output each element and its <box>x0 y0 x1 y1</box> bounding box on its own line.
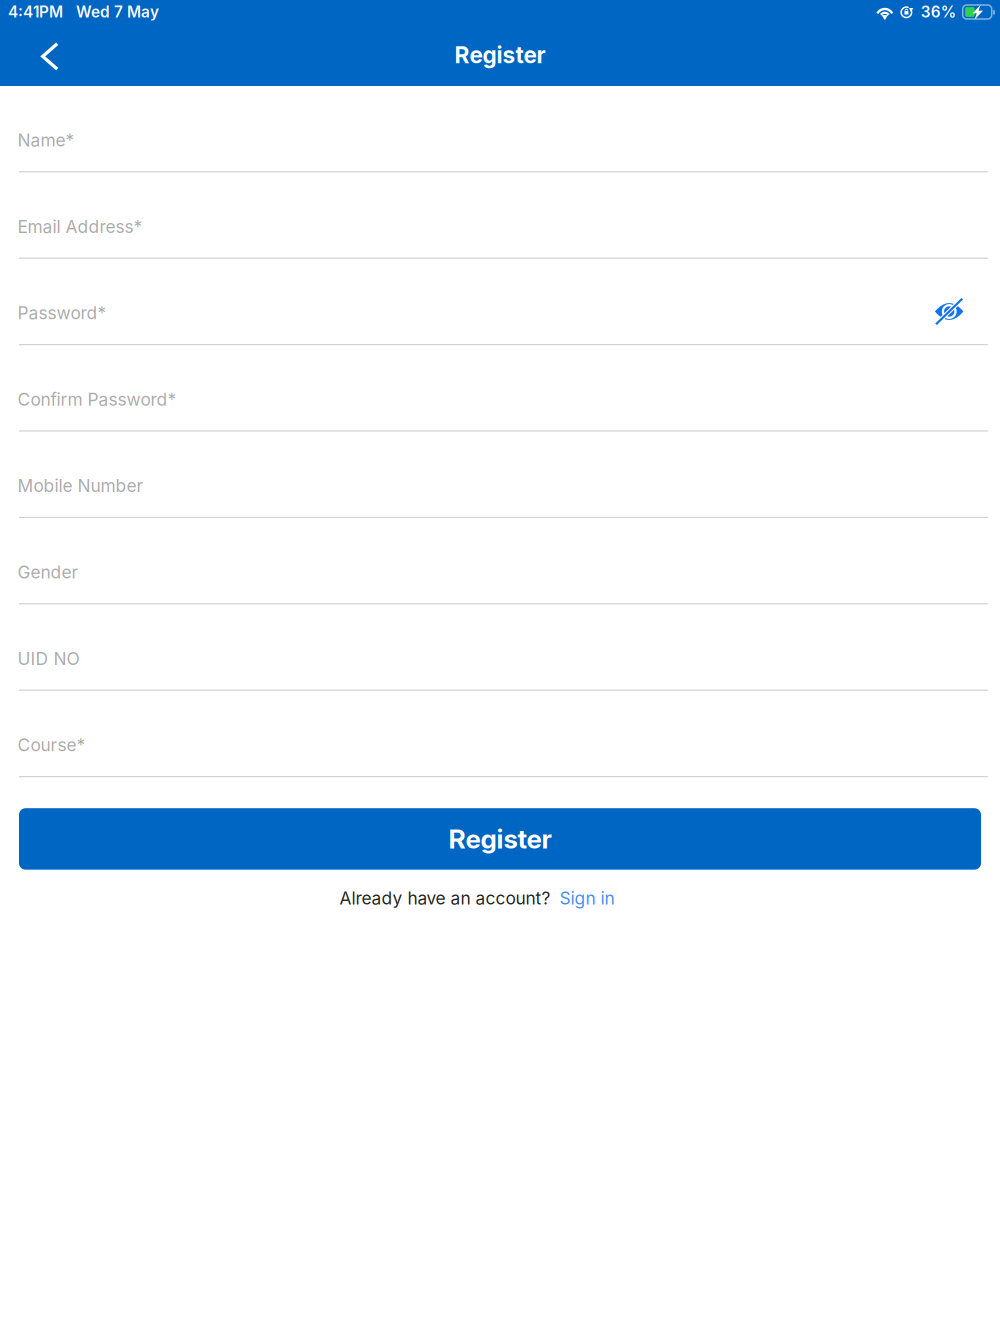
staticText: Wed 7 May <box>76 3 159 21</box>
staticText: Mobile Number <box>18 475 144 496</box>
staticText: Course* <box>18 734 86 755</box>
staticText: Password* <box>18 302 107 323</box>
staticText: Gender <box>18 562 79 583</box>
button[interactable]: Name* <box>18 119 982 161</box>
button[interactable]: UID NO <box>18 638 982 680</box>
staticText: 36% <box>921 3 956 21</box>
staticText: Email Address* <box>18 216 143 237</box>
button[interactable]: Mobile Number <box>18 465 982 507</box>
staticText: Name* <box>18 130 75 151</box>
staticText: 4:41PM <box>8 3 63 21</box>
button[interactable]: Register <box>19 808 981 870</box>
button[interactable]: Back <box>22 27 78 83</box>
button[interactable]: Course* <box>18 724 982 766</box>
button[interactable]: Gender <box>18 551 982 593</box>
button[interactable]: Email Address* <box>18 206 982 248</box>
staticText: Register <box>454 41 545 69</box>
staticText: Register <box>448 823 551 855</box>
button[interactable]: Show password <box>926 292 982 334</box>
staticText: Already have an account? <box>339 888 550 909</box>
staticText: Sign in <box>559 888 614 909</box>
button[interactable]: Confirm Password* <box>18 378 982 420</box>
button[interactable]: Password* <box>18 292 926 334</box>
staticText: Confirm Password* <box>18 389 177 410</box>
button[interactable]: Sign in <box>550 888 614 909</box>
staticText: UID NO <box>18 648 80 669</box>
